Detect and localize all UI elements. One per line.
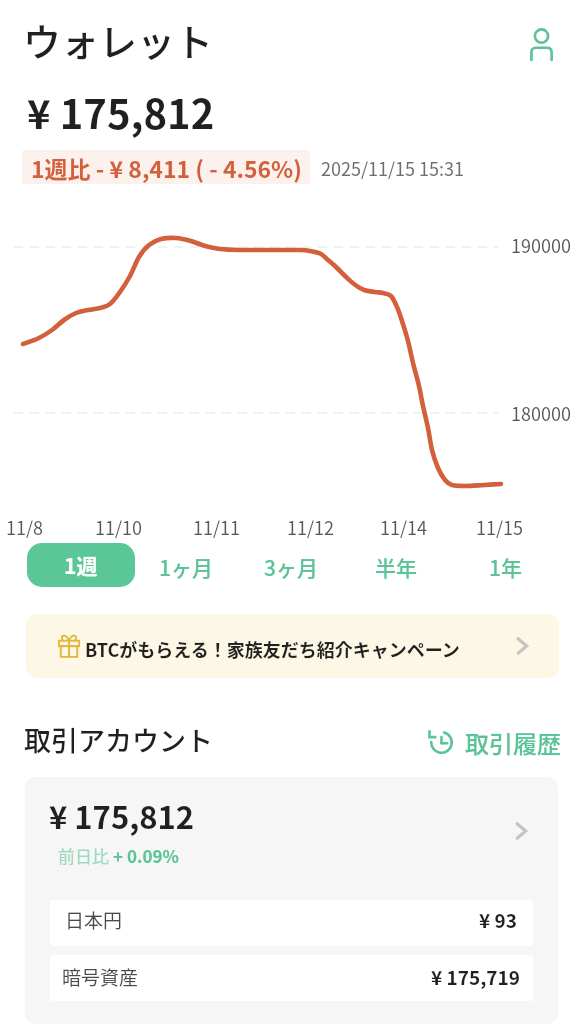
staticText: + 0.09% [113,843,179,868]
staticText: 取引履歴 [465,725,561,760]
staticText: 180000 [511,400,571,426]
staticText: ¥ 93 [479,906,517,934]
staticText: ¥ 175,719 [431,963,520,991]
staticText: 1ヶ月 [159,552,213,582]
staticText: 前日比 [58,843,113,868]
staticText: 1週 [64,550,98,580]
staticText: 取引アカウント [24,720,213,759]
staticText: 11/11 [193,514,241,540]
button[interactable]: Account [519,22,563,66]
staticText: 2025/11/15 15:31 [321,155,465,181]
staticText: 190000 [511,232,571,258]
staticText: 暗号資産 [62,963,139,991]
button[interactable]: 取引履歴 [424,721,565,764]
staticText: BTCがもらえる！家族友だち紹介キャンペーン [85,636,460,662]
button[interactable]: ¥ 175,812 [25,777,558,899]
staticText: ウォレット [23,12,214,67]
button[interactable]: 3ヶ月 [254,544,328,590]
button[interactable]: 暗号資産 [50,955,533,1001]
staticText: 半年 [375,552,417,582]
button[interactable]: 半年 [365,544,427,590]
button[interactable]: 1年 [479,544,532,590]
button[interactable]: 日本円 [50,900,533,946]
staticText: 11/10 [95,514,143,540]
button[interactable]: 1週 [27,543,135,587]
staticText: 11/12 [287,514,335,540]
staticText: 日本円 [65,906,123,934]
staticText: 1年 [489,552,522,582]
staticText: ¥ 175,812 [49,793,195,838]
button[interactable]: 1ヶ月 [149,544,223,590]
staticText: 11/14 [380,514,428,540]
staticText: 1週比 - ¥ 8,411 ( - 4.56%) [31,151,302,184]
staticText: ¥ 175,812 [27,83,215,141]
staticText: 11/15 [476,514,524,540]
button[interactable]: BTCがもらえる！家族友だち紹介キャンペーン [26,614,559,678]
staticText: 11/8 [6,514,44,540]
staticText: 3ヶ月 [264,552,318,582]
